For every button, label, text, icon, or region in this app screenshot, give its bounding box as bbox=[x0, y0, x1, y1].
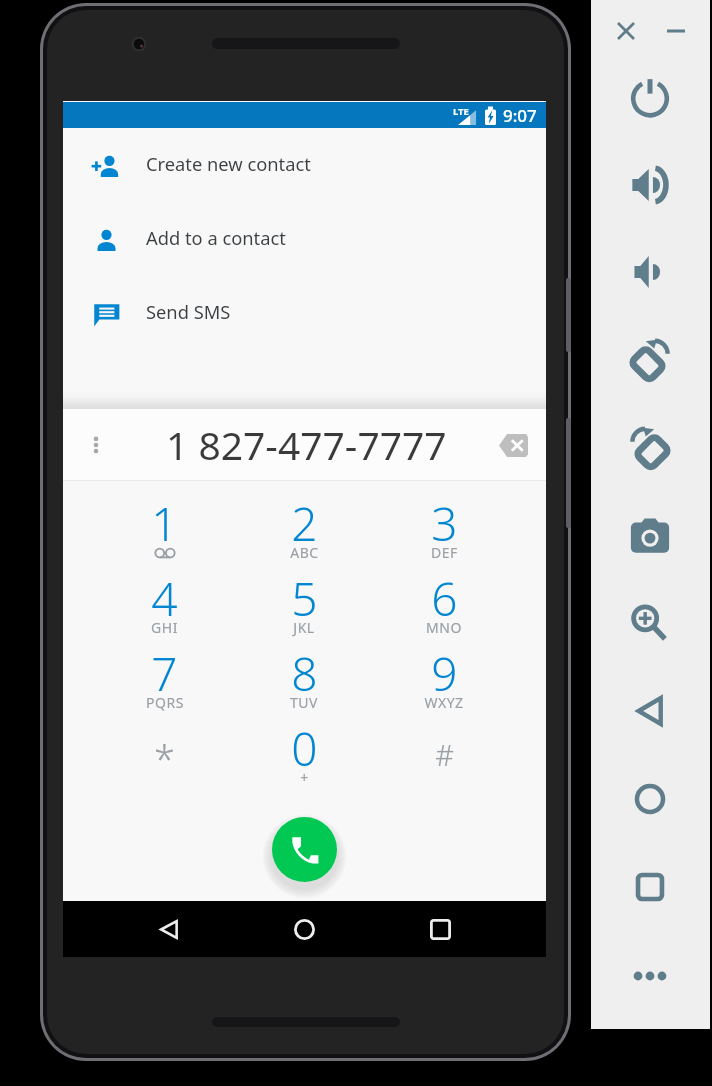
button[interactable]: Minimize bbox=[659, 14, 693, 48]
staticText: DEF bbox=[431, 543, 458, 562]
staticText: Add to a contact bbox=[146, 225, 286, 250]
button[interactable]: Overview bbox=[624, 861, 676, 913]
staticText: # bbox=[435, 735, 454, 774]
button[interactable]: Back bbox=[624, 685, 676, 737]
staticText: 1 bbox=[151, 492, 178, 555]
staticText: Create new contact bbox=[146, 151, 311, 176]
button[interactable]: Volume down bbox=[624, 246, 676, 298]
button[interactable]: Back bbox=[147, 901, 191, 957]
button[interactable]: Rotate left bbox=[624, 334, 676, 386]
staticText: ABC bbox=[290, 543, 319, 562]
button[interactable]: 6 bbox=[374, 562, 514, 637]
button[interactable]: More options bbox=[79, 428, 113, 462]
staticText: PQRS bbox=[146, 693, 184, 712]
staticText: 7 bbox=[151, 642, 178, 705]
staticText: MNO bbox=[426, 618, 462, 637]
button[interactable]: Home bbox=[282, 901, 326, 957]
button[interactable]: Rotate right bbox=[624, 422, 676, 474]
button[interactable]: 5 bbox=[234, 562, 374, 637]
button[interactable]: Call bbox=[272, 817, 337, 882]
button[interactable]: Recents bbox=[418, 901, 462, 957]
button[interactable]: Zoom bbox=[624, 598, 676, 650]
staticText: GHI bbox=[151, 618, 178, 637]
button[interactable]: Close bbox=[609, 14, 643, 48]
button[interactable]: 8 bbox=[234, 637, 374, 712]
button[interactable]: 0 bbox=[234, 712, 374, 787]
staticText: 8 bbox=[291, 642, 318, 705]
staticText: LTE bbox=[453, 105, 469, 118]
staticText: 4 bbox=[151, 567, 178, 630]
staticText: 5 bbox=[291, 567, 318, 630]
staticText: 9 bbox=[431, 642, 458, 705]
staticText: 1 827-477-7777 bbox=[166, 418, 447, 471]
button[interactable]: Volume up bbox=[624, 159, 676, 211]
button[interactable]: Screenshot bbox=[624, 510, 676, 562]
button[interactable]: 2 bbox=[234, 487, 374, 562]
staticText: 2 bbox=[291, 492, 318, 555]
staticText: * bbox=[154, 732, 175, 784]
staticText: 0 bbox=[291, 717, 318, 780]
staticText: Send SMS bbox=[146, 299, 231, 324]
button[interactable]: Backspace bbox=[492, 424, 534, 466]
button[interactable]: 1 bbox=[95, 487, 234, 562]
button[interactable]: 3 bbox=[374, 487, 514, 562]
button[interactable]: Send SMS bbox=[63, 277, 546, 351]
button[interactable]: Home bbox=[624, 773, 676, 825]
button[interactable]: * bbox=[95, 712, 234, 787]
button[interactable]: 7 bbox=[95, 637, 234, 712]
button[interactable]: 4 bbox=[95, 562, 234, 637]
button[interactable]: 9 bbox=[374, 637, 514, 712]
button[interactable]: Add to a contact bbox=[63, 203, 546, 277]
button[interactable]: Create new contact bbox=[63, 129, 546, 203]
staticText: WXYZ bbox=[424, 693, 464, 712]
staticText: + bbox=[300, 768, 309, 787]
staticText: 9:07 bbox=[503, 104, 537, 127]
staticText: TUV bbox=[290, 693, 318, 712]
button[interactable]: # bbox=[374, 712, 514, 787]
staticText: JKL bbox=[293, 618, 315, 637]
staticText: 6 bbox=[431, 567, 458, 630]
staticText: 3 bbox=[431, 492, 458, 555]
button[interactable]: Power bbox=[624, 71, 676, 123]
button[interactable]: More bbox=[624, 950, 676, 1002]
